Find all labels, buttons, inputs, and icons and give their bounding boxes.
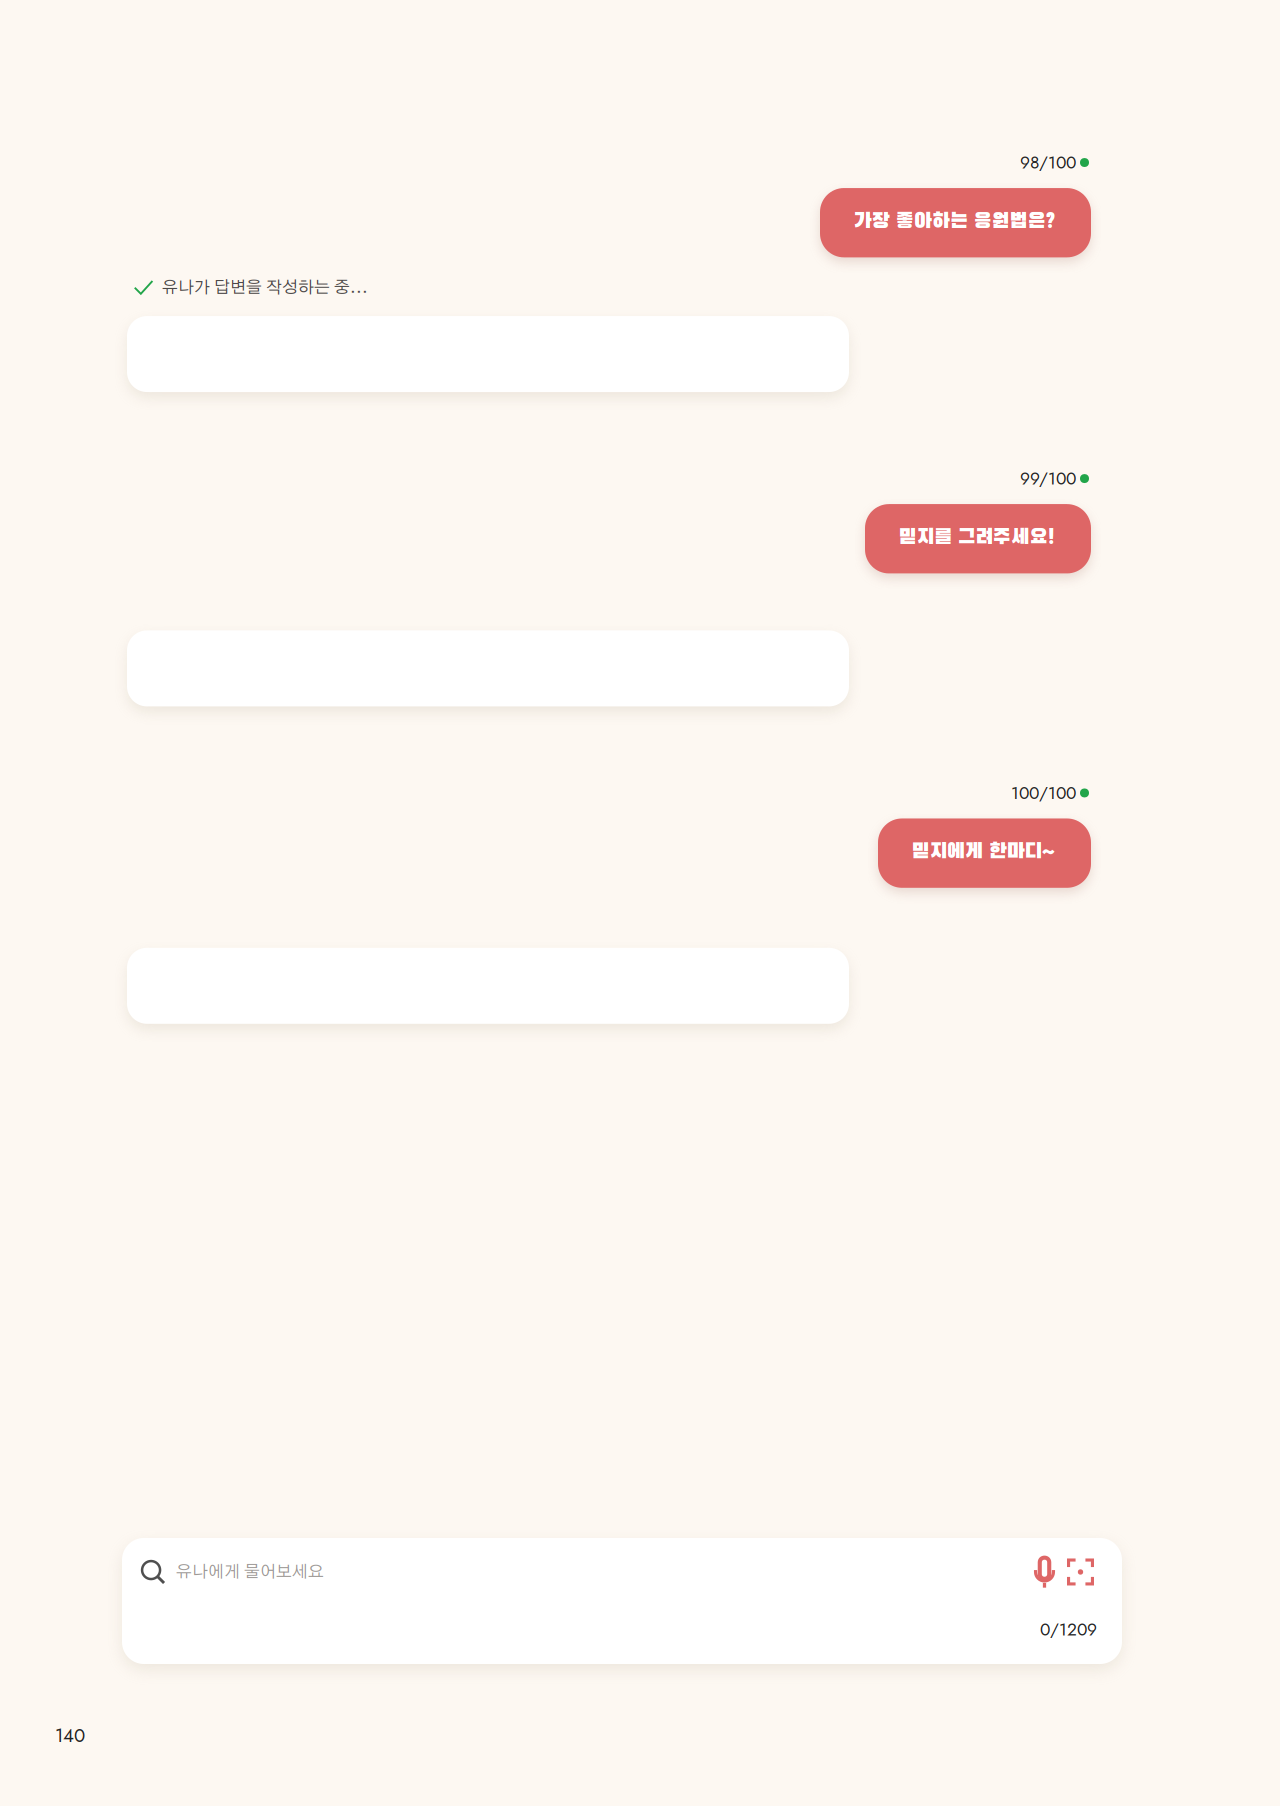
staticText: 100/100 (1011, 780, 1076, 805)
staticText: 가장 좋아하는 응원법은? (854, 211, 1055, 232)
staticText: 99/100 (1020, 466, 1076, 491)
button[interactable]: Search (141, 1560, 165, 1584)
button[interactable]: Voice input (1034, 1556, 1055, 1588)
staticText: 믿지에게 한마디~ (912, 841, 1055, 863)
staticText: 유나가 답변을 작성하는 중... (162, 279, 368, 296)
staticText: 믿지를 그려주세요! (899, 527, 1055, 548)
button[interactable]: Lens search (1067, 1558, 1094, 1585)
staticText: 유나에게 물어보세요 (176, 1564, 324, 1580)
button[interactable]: 믿지를 그려주세요! (865, 504, 1091, 573)
button[interactable]: 가장 좋아하는 응원법은? (820, 188, 1091, 257)
staticText: 140 (55, 1722, 85, 1749)
staticText: 98/100 (1020, 150, 1076, 175)
button[interactable]: 믿지에게 한마디~ (878, 818, 1091, 888)
staticText: 0/1209 (1040, 1617, 1097, 1642)
